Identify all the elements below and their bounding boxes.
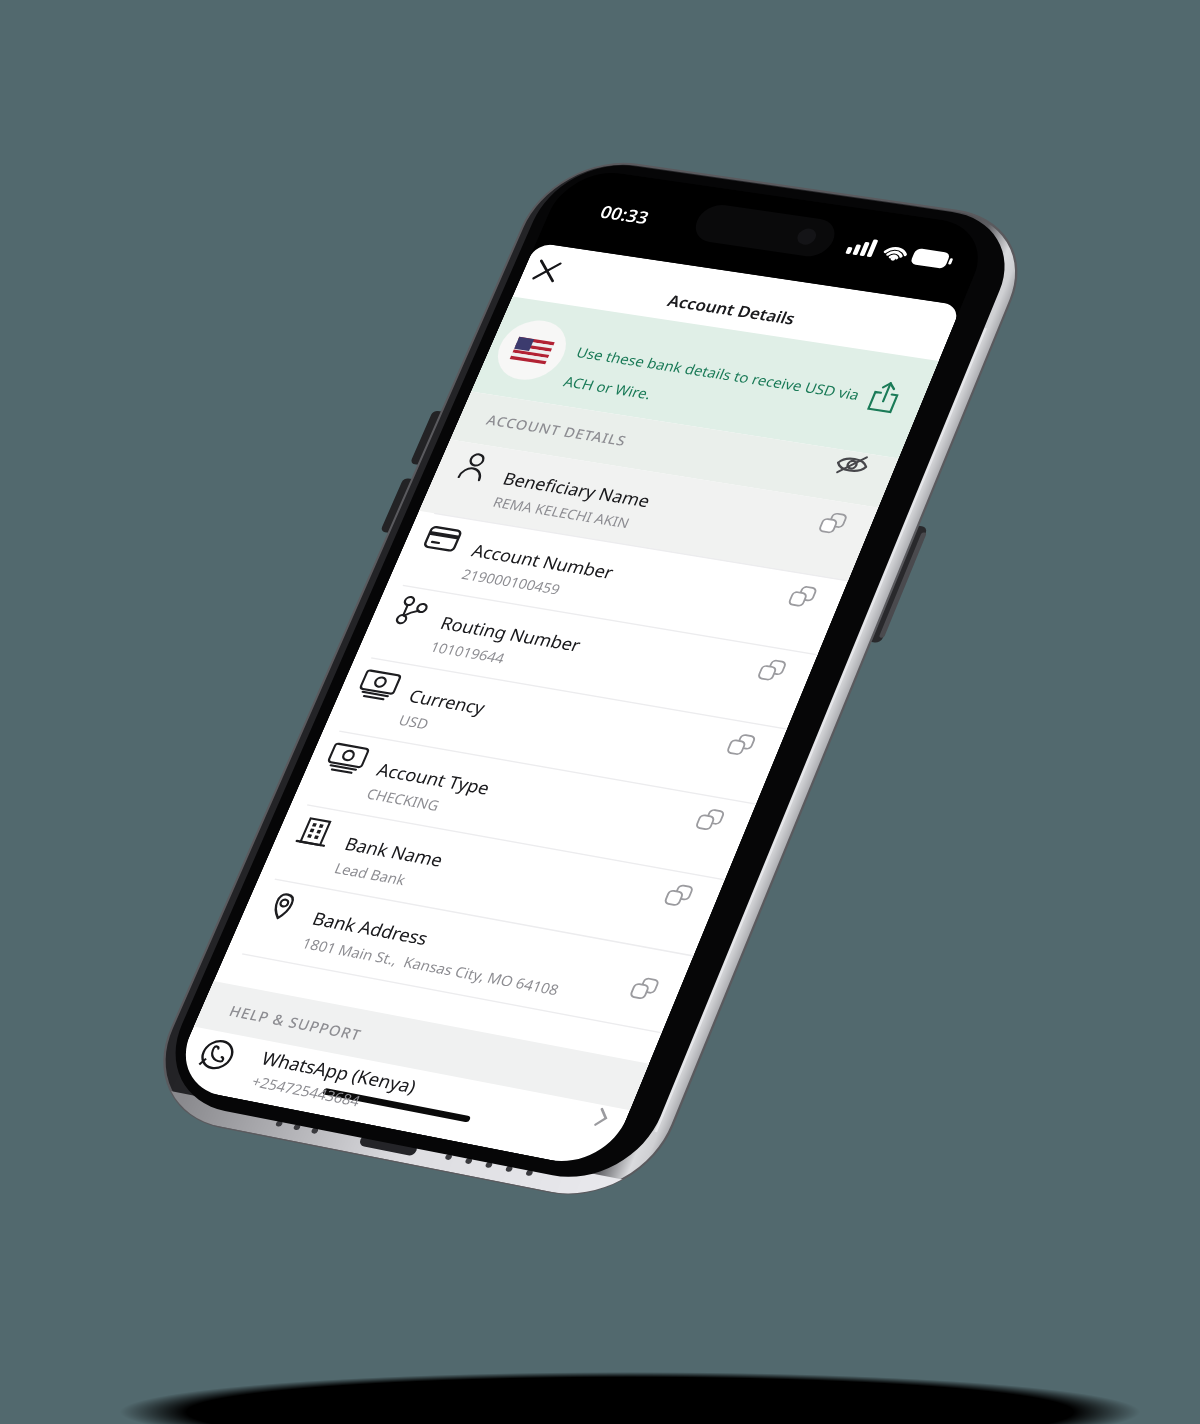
button[interactable]: Bank Address	[20, 804, 458, 884]
button[interactable]: WhatsApp (Kenya)	[20, 962, 458, 1020]
staticText: 1801 Main St., Kansas City, MO 64108	[89, 851, 347, 871]
button[interactable]: Routing Number	[20, 484, 458, 564]
button[interactable]: Account Number	[20, 404, 458, 484]
staticText: +254725443684	[98, 995, 206, 1015]
button[interactable]: Currency	[20, 564, 458, 644]
button[interactable]: Beneficiary Name	[20, 324, 458, 404]
button[interactable]: Account Type	[20, 644, 458, 724]
staticText: WhatsApp (Kenya)	[98, 969, 252, 994]
button[interactable]: Bank Name	[20, 724, 458, 804]
